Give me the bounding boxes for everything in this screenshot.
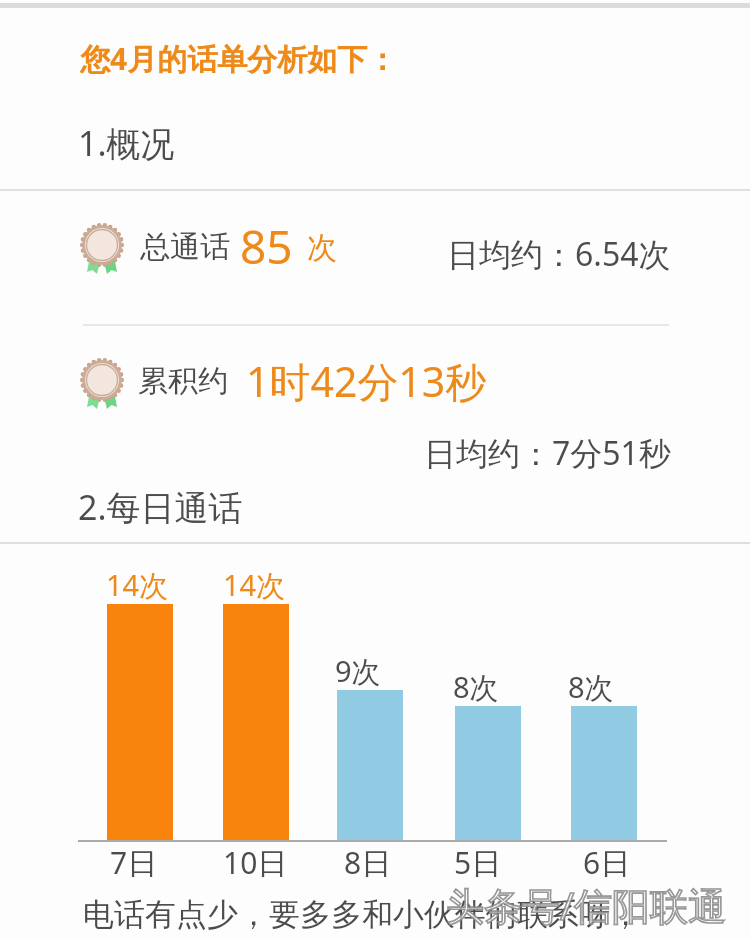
staticText: 14次	[106, 565, 169, 605]
staticText: 电话有点少，要多多和小伙伴们联系呀，	[83, 895, 641, 934]
staticText: 10日	[223, 842, 288, 883]
staticText: 6日	[583, 842, 631, 883]
staticText: 头条号/信阳联通	[446, 879, 727, 931]
staticText: 14次	[223, 565, 286, 605]
staticText: 日均约：6.54次	[447, 232, 671, 276]
staticText: 9次	[335, 651, 381, 691]
staticText: 85	[240, 215, 293, 278]
staticText: 1.概况	[78, 120, 175, 166]
staticText: 累积约	[138, 362, 228, 400]
staticText: 1时42分13秒	[246, 353, 487, 409]
staticText: 头条号/信阳联通	[446, 879, 727, 931]
staticText: 8日	[344, 842, 392, 883]
staticText: 日均约：7分51秒	[424, 431, 671, 475]
staticText: 总通话	[140, 228, 230, 266]
staticText: 2.每日通话	[78, 484, 243, 530]
staticText: 7日	[110, 842, 158, 883]
staticText: 8次	[453, 667, 499, 707]
staticText: 5日	[454, 842, 502, 883]
staticText: 8次	[568, 667, 614, 707]
staticText: 次	[307, 229, 337, 267]
staticText: 您4月的话单分析如下：	[80, 38, 398, 79]
